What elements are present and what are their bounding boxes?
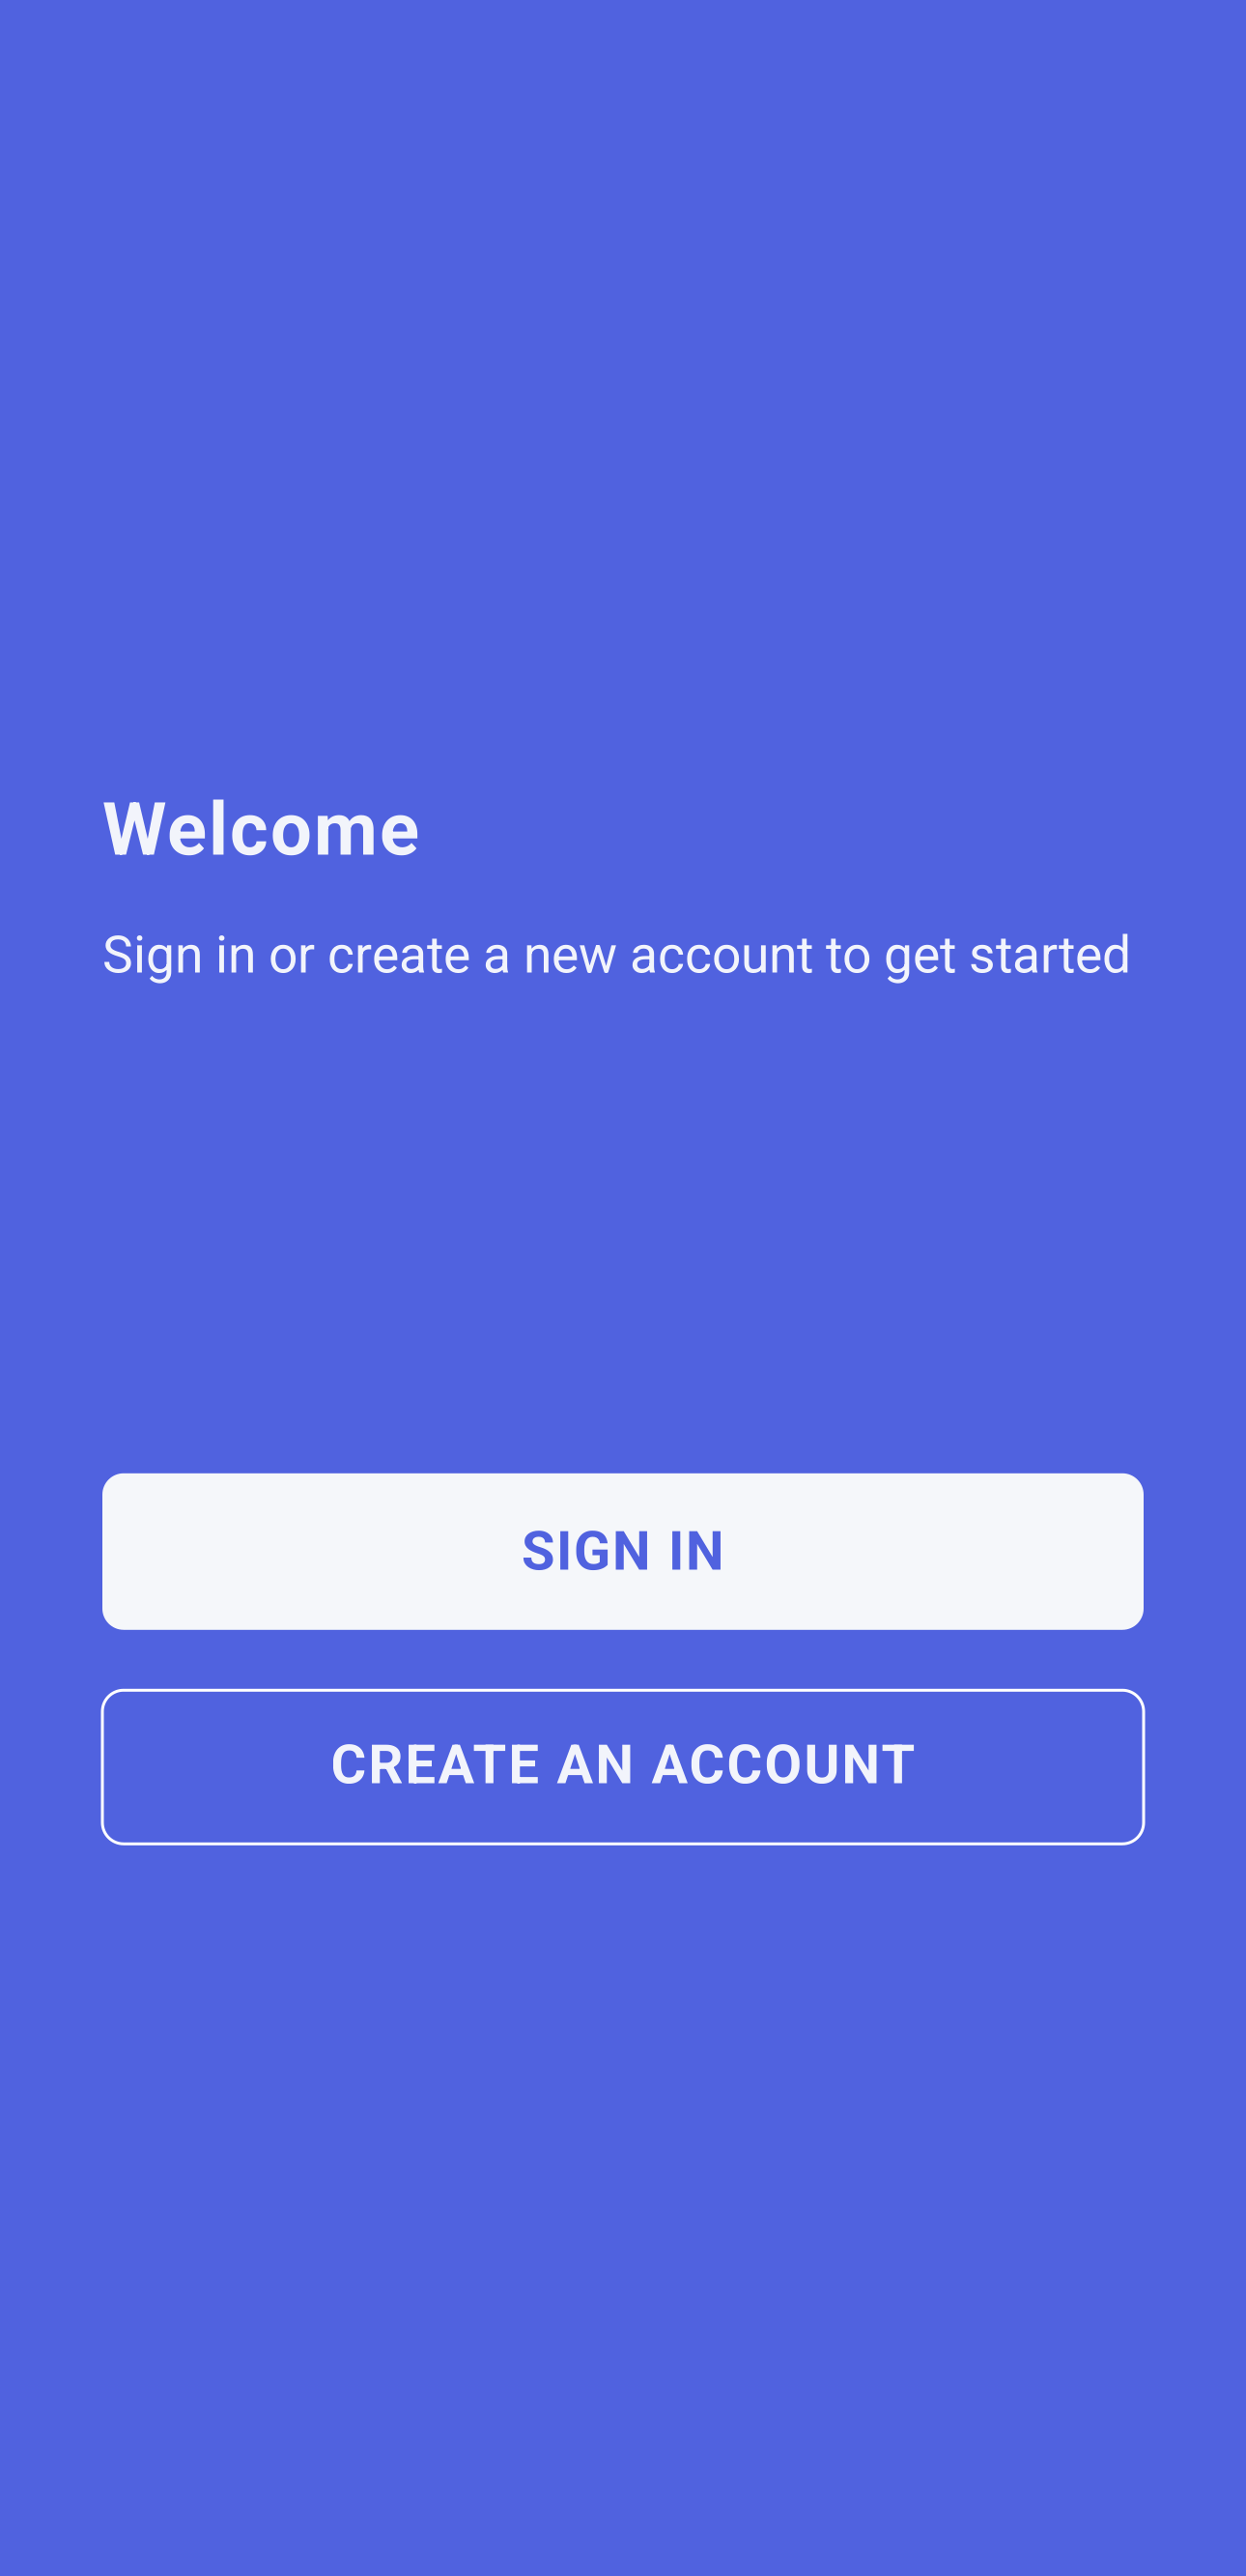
staticText: CREATE AN ACCOUNT [331,1734,915,1796]
staticText: Sign in or create a new account to get s… [102,925,1131,984]
button[interactable]: SIGN IN [102,1473,1144,1630]
button[interactable]: CREATE AN ACCOUNT [102,1690,1144,1844]
staticText: SIGN IN [522,1520,724,1582]
staticText: Welcome [102,787,419,871]
